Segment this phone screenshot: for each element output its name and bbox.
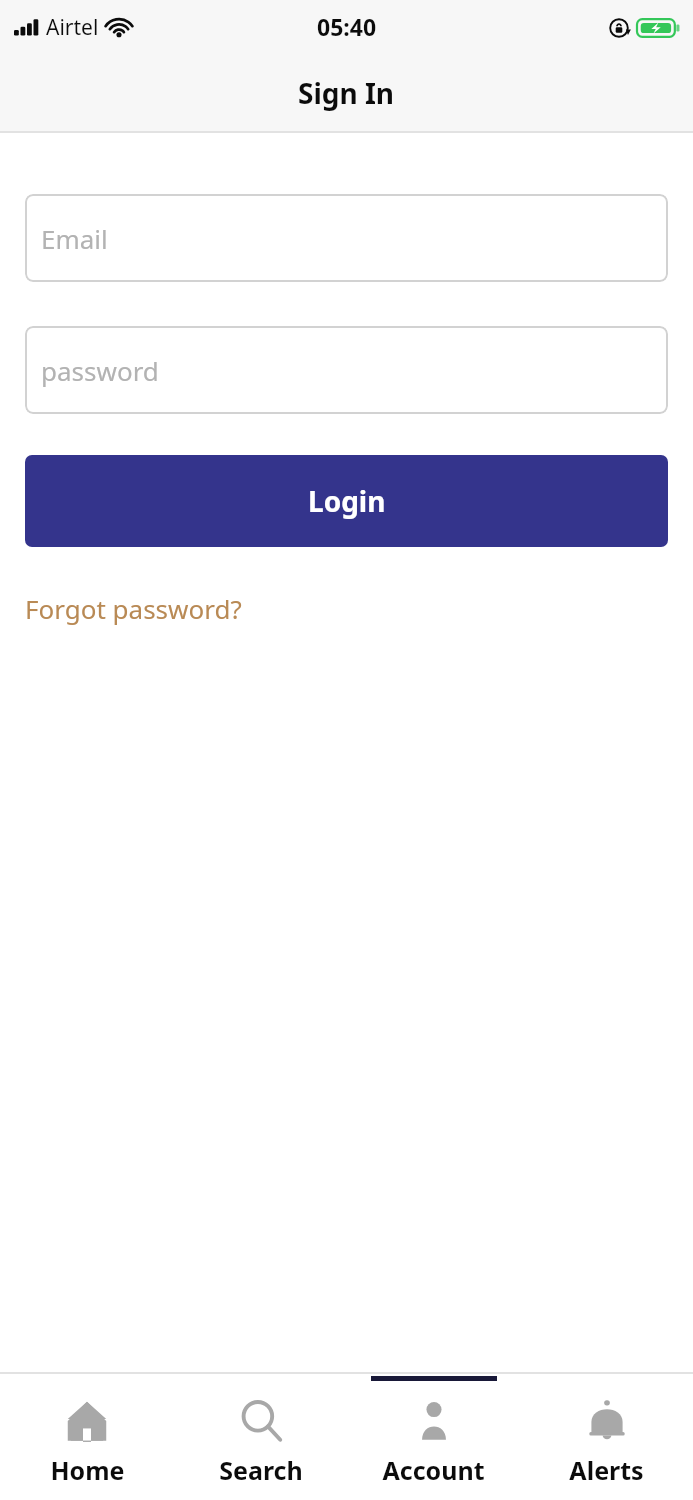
button[interactable]: Search	[174, 1372, 347, 1500]
staticText: Airtel	[46, 13, 99, 42]
button[interactable]: password	[25, 326, 668, 414]
button[interactable]: Login	[25, 455, 668, 547]
staticText: Home	[50, 1453, 125, 1487]
button[interactable]: Alerts	[520, 1372, 693, 1500]
staticText: Login	[308, 482, 386, 520]
staticText: Search	[219, 1453, 303, 1487]
staticText: password	[41, 353, 159, 388]
button[interactable]: Forgot password?	[25, 591, 242, 626]
button[interactable]: Account	[347, 1372, 520, 1500]
staticText: 05:40	[317, 11, 377, 42]
staticText: Account	[382, 1453, 485, 1487]
button[interactable]: Email	[25, 194, 668, 282]
staticText: Alerts	[569, 1453, 644, 1487]
staticText: Forgot password?	[25, 591, 242, 626]
button[interactable]: Home	[0, 1372, 174, 1500]
staticText: Email	[41, 221, 108, 256]
staticText: Sign In	[298, 74, 395, 112]
